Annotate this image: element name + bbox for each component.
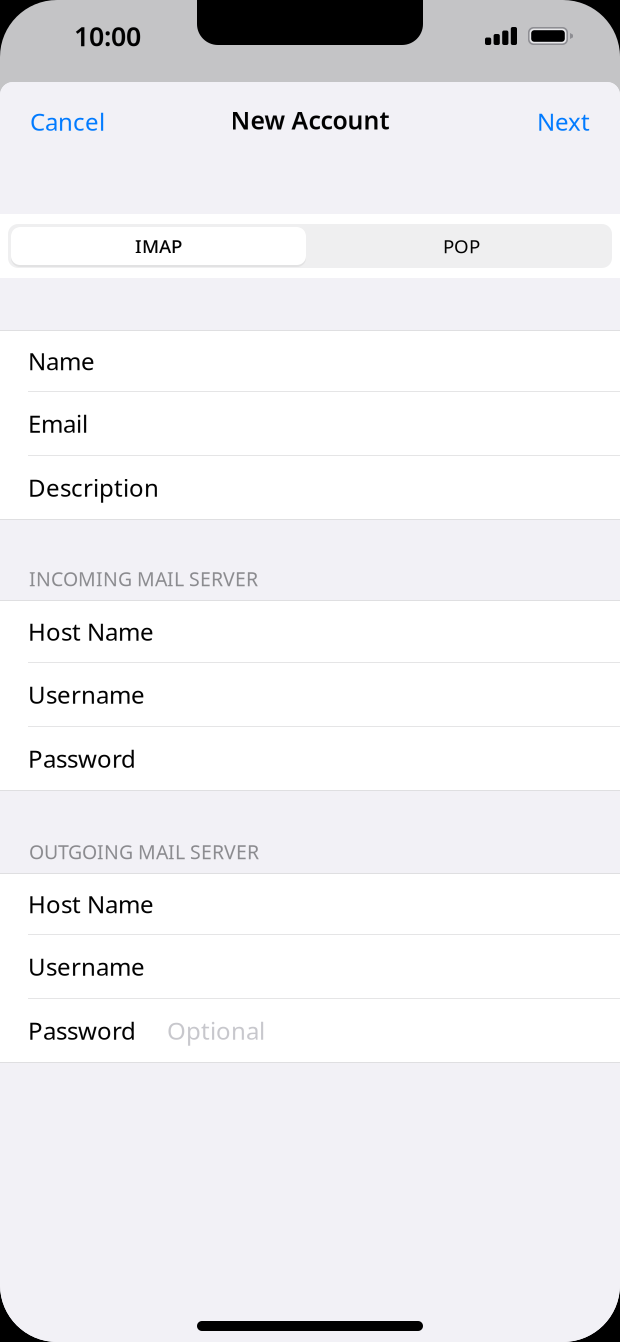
staticText: Host Name xyxy=(28,888,154,920)
staticText: Username xyxy=(28,679,145,710)
staticText: Host Name xyxy=(28,616,154,647)
button[interactable]: IMAP xyxy=(11,224,306,268)
button[interactable]: Host Name xyxy=(0,874,620,935)
button[interactable]: POP xyxy=(306,224,609,268)
staticText: New Account xyxy=(230,103,389,137)
staticText: Password xyxy=(28,743,136,774)
staticText: Username xyxy=(28,951,145,982)
staticText: Cancel xyxy=(30,106,105,137)
staticText: Email xyxy=(28,408,88,439)
button[interactable]: Password xyxy=(0,999,620,1062)
staticText: Next xyxy=(537,106,590,137)
staticText: INCOMING MAIL SERVER xyxy=(29,565,258,592)
staticText: Name xyxy=(28,345,95,377)
button[interactable]: Username xyxy=(0,935,620,999)
staticText: Optional xyxy=(167,1015,265,1046)
button[interactable]: Next xyxy=(507,92,620,154)
button[interactable]: Description xyxy=(0,456,620,519)
staticText: 10:00 xyxy=(74,18,141,54)
button[interactable]: Username xyxy=(0,663,620,727)
staticText: Password xyxy=(28,1015,136,1046)
button[interactable]: Name xyxy=(0,331,620,392)
button[interactable]: Host Name xyxy=(0,601,620,663)
button[interactable]: Password xyxy=(0,727,620,790)
staticText: POP xyxy=(443,234,480,258)
staticText: IMAP xyxy=(135,234,182,258)
staticText: OUTGOING MAIL SERVER xyxy=(29,838,259,865)
button[interactable]: Cancel xyxy=(0,92,135,154)
staticText: Description xyxy=(28,472,159,503)
button[interactable]: Email xyxy=(0,392,620,456)
